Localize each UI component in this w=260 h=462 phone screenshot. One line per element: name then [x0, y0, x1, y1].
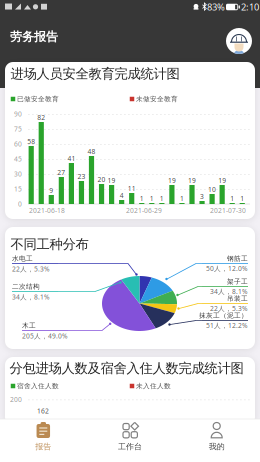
- staticText: 4: [120, 191, 124, 200]
- staticText: 不同工种分布: [10, 236, 88, 252]
- staticText: 19: [188, 176, 196, 185]
- staticText: 劳务报告: [10, 29, 58, 44]
- staticText: 工作台: [118, 442, 142, 451]
- staticText: 未入住人数: [136, 382, 171, 390]
- staticText: 3: [200, 192, 204, 201]
- staticText: 2021-07-30: [210, 206, 246, 215]
- staticText: 木工: [22, 321, 36, 330]
- staticText: 75: [14, 125, 22, 133]
- staticText: 9: [49, 186, 53, 195]
- staticText: 22人，5.3%: [210, 304, 248, 313]
- staticText: 162: [37, 407, 49, 415]
- staticText: 抹灰工（泥工）: [199, 311, 248, 320]
- staticText: 1: [160, 194, 164, 203]
- staticText: 19: [218, 176, 226, 185]
- staticText: 82: [37, 113, 45, 122]
- staticText: 报告: [35, 442, 51, 451]
- staticText: 34人，8.1%: [210, 287, 248, 296]
- staticText: 27: [57, 168, 65, 177]
- staticText: 1: [150, 194, 154, 203]
- staticText: 2021-06-29: [126, 206, 162, 215]
- staticText: 22人，5.3%: [12, 264, 50, 273]
- staticText: 20: [98, 175, 106, 184]
- staticText: 90: [14, 110, 22, 118]
- staticText: 分包进场人数及宿舍入住人数完成统计图: [9, 360, 243, 376]
- staticText: 1: [140, 194, 144, 203]
- staticText: 34人，8.1%: [12, 292, 50, 301]
- staticText: 1: [240, 194, 244, 203]
- staticText: 吊装工: [227, 294, 248, 303]
- button[interactable]: 报告: [0, 419, 87, 462]
- staticText: 60: [14, 140, 22, 148]
- staticText: 41: [67, 154, 75, 163]
- staticText: 205人，49.0%: [22, 331, 68, 340]
- button[interactable]: [226, 28, 252, 54]
- staticText: 钢筋工: [227, 254, 248, 263]
- staticText: 0: [18, 200, 22, 208]
- staticText: 48: [87, 147, 95, 156]
- staticText: 58: [27, 137, 35, 146]
- staticText: 50人，12.0%: [206, 264, 248, 273]
- staticText: 二次结构: [12, 282, 40, 291]
- staticText: 23: [77, 172, 85, 181]
- staticText: 已做安全教育: [17, 95, 59, 103]
- button[interactable]: 我的: [173, 419, 260, 462]
- staticText: 10: [208, 185, 216, 194]
- staticText: 83%: [207, 1, 225, 13]
- staticText: 宿舍入住人数: [17, 382, 59, 390]
- staticText: 45: [14, 155, 22, 163]
- staticText: 水电工: [12, 254, 33, 263]
- staticText: 1: [180, 194, 184, 203]
- staticText: 200: [10, 395, 22, 404]
- staticText: 进场人员安全教育完成统计图: [10, 65, 179, 82]
- staticText: 未做安全教育: [136, 95, 178, 103]
- staticText: 30: [14, 170, 22, 178]
- staticText: 我的: [209, 442, 225, 451]
- staticText: 2021-06-18: [29, 206, 65, 215]
- staticText: 51人，12.2%: [206, 321, 248, 330]
- staticText: 19: [168, 176, 176, 185]
- staticText: 架子工: [227, 277, 248, 286]
- button[interactable]: 工作台: [87, 419, 173, 462]
- staticText: 11: [128, 184, 136, 193]
- staticText: 19: [108, 176, 116, 185]
- staticText: 1: [230, 194, 234, 203]
- staticText: 2:10: [241, 1, 259, 13]
- staticText: 15: [14, 185, 22, 193]
